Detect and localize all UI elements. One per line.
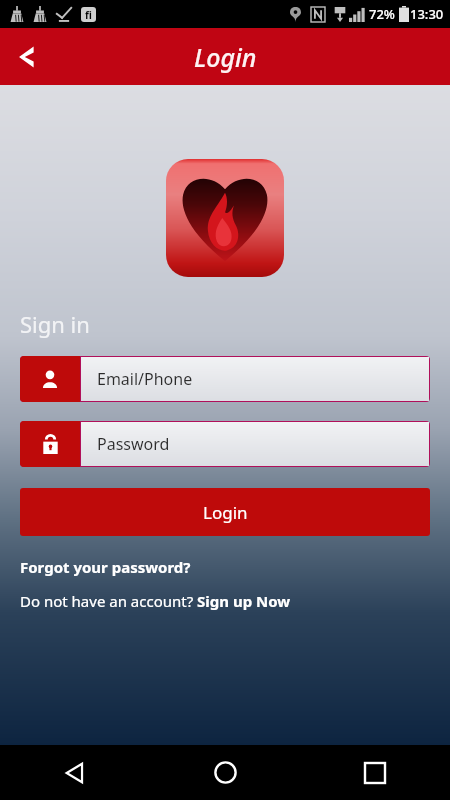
button[interactable]: Password <box>20 421 430 467</box>
staticText: 72% <box>369 5 395 23</box>
staticText: Login <box>203 501 248 524</box>
staticText: fi <box>85 8 92 22</box>
staticText: 13:30 <box>410 5 444 23</box>
button[interactable]: Login <box>20 488 430 536</box>
staticText: Sign in <box>20 309 90 339</box>
button[interactable]: App logo <box>166 159 284 277</box>
staticText: Email/Phone <box>97 368 193 390</box>
button[interactable]: Email/Phone <box>20 356 430 402</box>
staticText: Password <box>97 433 170 455</box>
staticText: Login <box>194 40 257 74</box>
staticText: Forgot your password? <box>20 557 191 577</box>
button[interactable]: Home <box>150 745 300 800</box>
button[interactable]: Back <box>0 745 150 800</box>
button[interactable]: Do not have an account? Sign up Now <box>20 591 291 611</box>
button[interactable]: Recent apps <box>300 745 450 800</box>
staticText: Do not have an account? Sign up Now <box>20 591 291 611</box>
button[interactable]: Forgot your password? <box>20 557 191 577</box>
button[interactable]: Back <box>0 31 52 83</box>
